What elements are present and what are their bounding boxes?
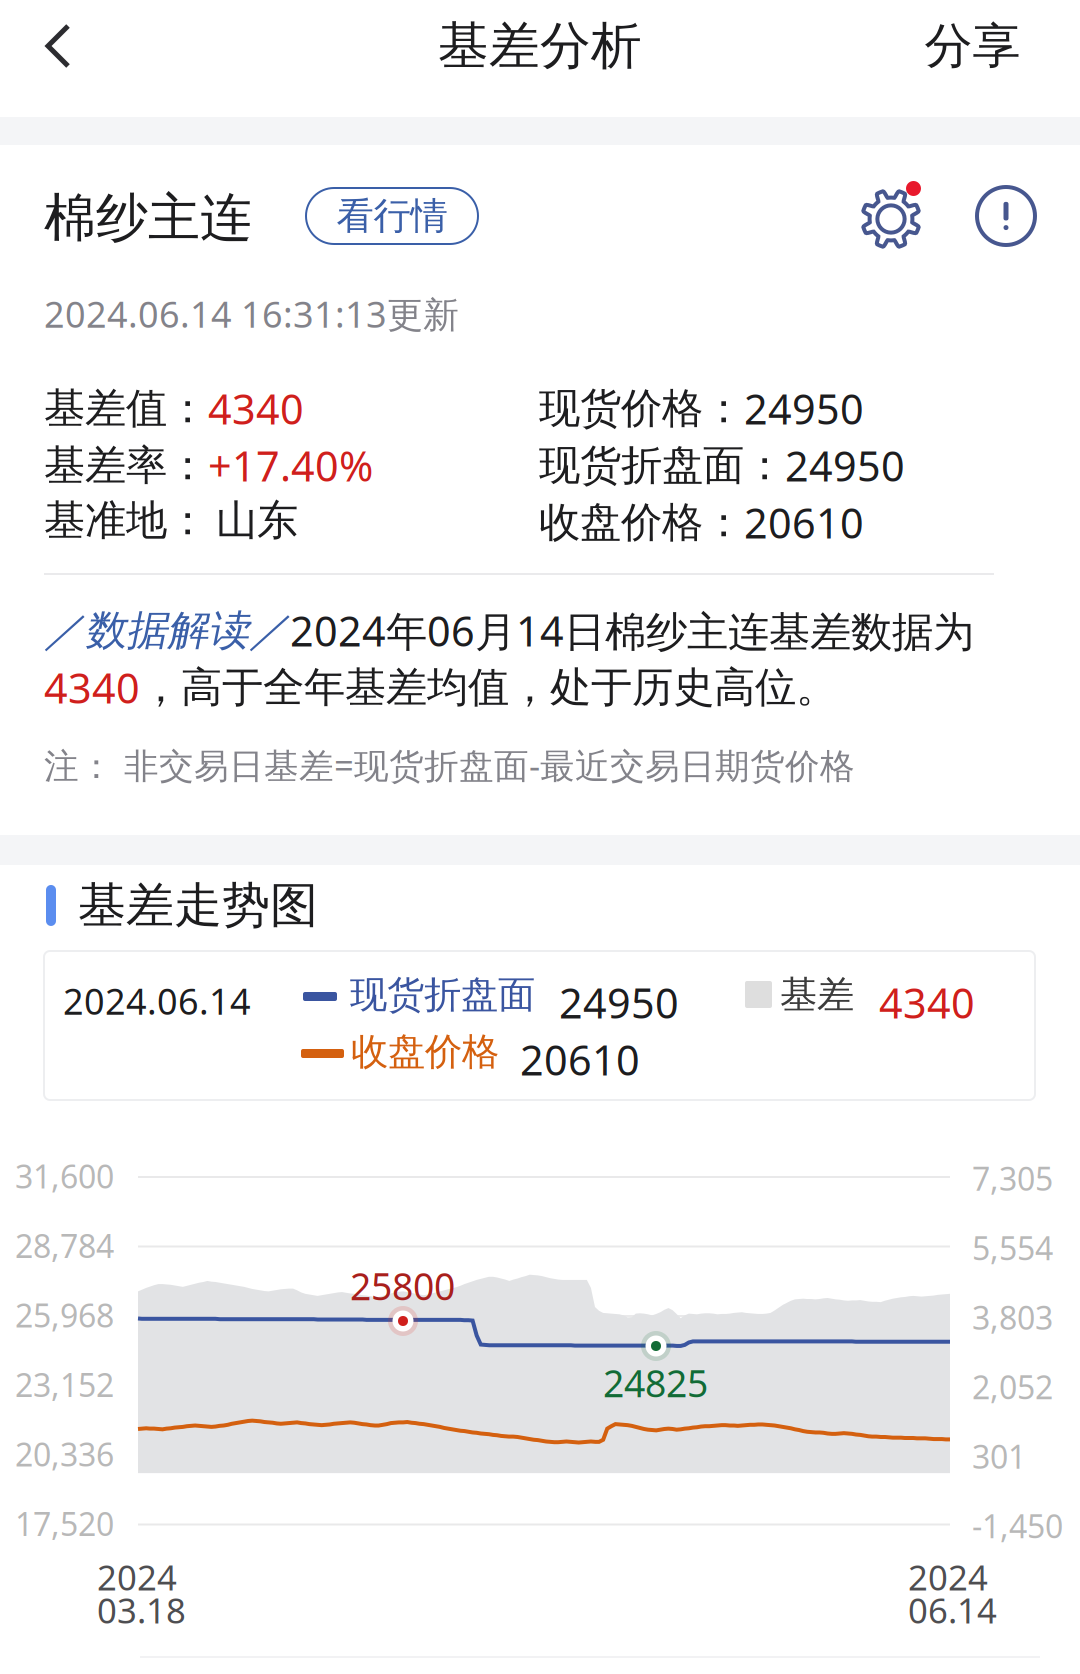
staticText: 23,152 <box>15 1363 114 1406</box>
staticText: 24825 <box>603 1358 708 1408</box>
staticText: 基准地： <box>44 495 216 546</box>
staticText: 现货折盘面 <box>350 972 535 1018</box>
staticText: 3,803 <box>972 1296 1053 1338</box>
staticText: 看行情 <box>336 193 447 239</box>
staticText: 28,784 <box>15 1224 114 1267</box>
staticText: 20,336 <box>15 1433 114 1475</box>
staticText: 5,554 <box>972 1226 1053 1269</box>
staticText: 基差率： <box>44 440 208 491</box>
staticText: 24950 <box>559 975 679 1030</box>
button[interactable]: 分享 <box>865 0 1080 92</box>
staticText: 31,600 <box>15 1155 114 1197</box>
staticText: 20610 <box>520 1032 640 1087</box>
staticText: 收盘价格： <box>539 497 744 548</box>
staticText: 24950 <box>744 381 864 436</box>
staticText: 2024.06.14 16:31:13更新 <box>44 290 459 338</box>
staticText: 2024年06月14日棉纱主连基差数据为 <box>290 603 974 658</box>
staticText: 20610 <box>744 495 864 550</box>
staticText: 17,520 <box>15 1502 114 1545</box>
staticText: ，高于全年基差均值，处于历史高位。 <box>140 662 837 713</box>
staticText: 2024 <box>97 1554 177 1600</box>
staticText: 基差 <box>780 972 854 1018</box>
staticText: -1,450 <box>972 1504 1063 1547</box>
staticText: 山东 <box>216 495 298 546</box>
button[interactable]: 返回 <box>0 0 116 92</box>
staticText: 06.14 <box>908 1587 997 1633</box>
staticText: 7,305 <box>972 1157 1053 1199</box>
staticText: 4340 <box>879 975 975 1030</box>
staticText: 棉纱主连 <box>44 186 252 250</box>
staticText: 25800 <box>350 1261 455 1311</box>
staticText: 收盘价格 <box>351 1029 499 1075</box>
staticText: 现货价格： <box>539 383 744 434</box>
staticText: 分享 <box>924 16 1020 75</box>
button[interactable]: 看行情 <box>306 188 478 244</box>
staticText: 基差分析 <box>438 15 642 77</box>
staticText: 现货折盘面： <box>539 440 785 491</box>
staticText: 24950 <box>785 438 905 493</box>
staticText: 4340 <box>208 381 304 436</box>
staticText: 基差走势图 <box>78 876 318 935</box>
staticText: 03.18 <box>97 1587 186 1633</box>
staticText: 2024 <box>908 1554 988 1600</box>
staticText: 注： 非交易日基差=现货折盘面-最近交易日期货价格 <box>44 742 855 788</box>
button[interactable]: 设置 <box>856 178 932 254</box>
button[interactable]: 说明 <box>976 186 1036 246</box>
staticText: ／数据解读／ <box>44 605 290 656</box>
staticText: +17.40% <box>208 438 373 493</box>
staticText: 25,968 <box>15 1294 114 1336</box>
staticText: 301 <box>972 1435 1026 1477</box>
staticText: 2024.06.14 <box>63 977 251 1025</box>
staticText: 2,052 <box>972 1365 1053 1408</box>
staticText: 基差值： <box>44 383 208 434</box>
staticText: 4340 <box>44 660 140 715</box>
